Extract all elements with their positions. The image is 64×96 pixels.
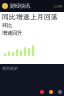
staticText: 相关标的 — [2, 66, 18, 71]
staticText: 环比 — [2, 22, 12, 29]
staticText: 同比增速上月回落 — [2, 13, 58, 21]
staticText: 增速回升 — [2, 30, 22, 36]
staticText: 财经快讯 — [10, 3, 30, 9]
staticText: 12:40 — [53, 3, 62, 9]
